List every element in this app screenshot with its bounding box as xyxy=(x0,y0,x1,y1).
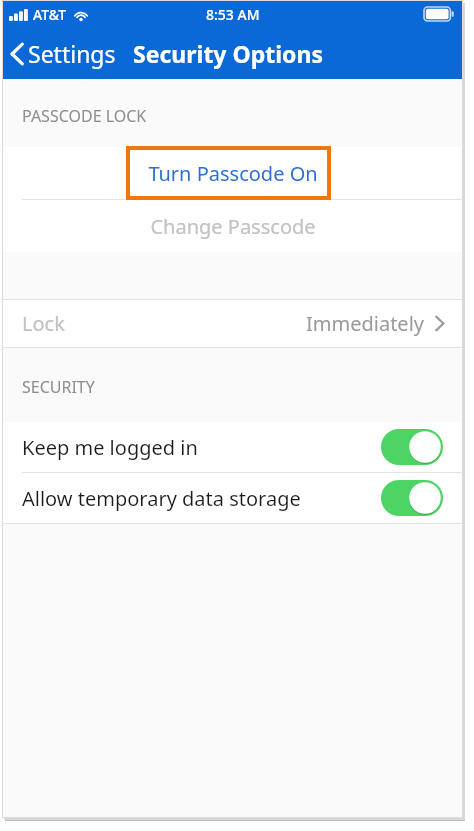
staticText: Settings xyxy=(28,38,116,69)
button[interactable]: Settings xyxy=(2,32,124,75)
staticText: Keep me logged in xyxy=(22,434,198,461)
staticText: Immediately xyxy=(306,310,424,337)
staticText: PASSCODE LOCK xyxy=(22,105,147,127)
staticText: Allow temporary data storage xyxy=(22,485,301,512)
button[interactable]: Change Passcode xyxy=(2,200,463,252)
staticText: Turn Passcode On xyxy=(148,160,318,187)
staticText: Security Options xyxy=(133,38,323,69)
staticText: Lock xyxy=(22,310,65,337)
staticText: 8:53 AM xyxy=(206,5,260,24)
button[interactable]: Toggle Keep me logged in xyxy=(381,429,443,465)
button[interactable]: Toggle Allow temporary data storage xyxy=(381,480,443,516)
staticText: SECURITY xyxy=(22,376,95,398)
button[interactable]: Turn Passcode On xyxy=(2,147,463,199)
staticText: AT&T xyxy=(33,5,67,24)
button[interactable]: Allow temporary data storage xyxy=(2,473,463,523)
button[interactable]: Lock xyxy=(2,300,463,347)
button[interactable]: Keep me logged in xyxy=(2,422,463,472)
staticText: Change Passcode xyxy=(150,213,316,240)
